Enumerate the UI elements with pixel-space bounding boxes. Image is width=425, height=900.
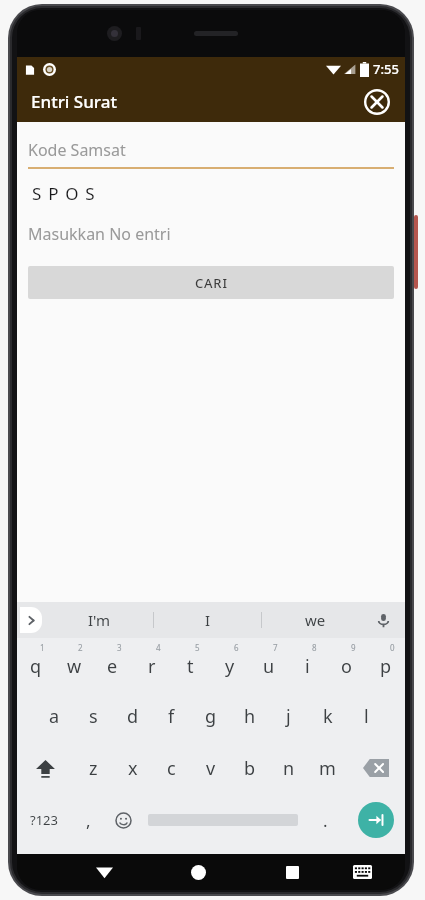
button[interactable]: Shift bbox=[17, 742, 74, 794]
button[interactable]: x bbox=[113, 742, 152, 794]
staticText: we bbox=[305, 610, 326, 630]
staticText: p bbox=[380, 654, 392, 679]
button[interactable]: . bbox=[304, 794, 347, 846]
staticText: Entri Surat bbox=[31, 90, 117, 113]
staticText: Masukkan No entri bbox=[28, 223, 171, 245]
staticText: Kode Samsat bbox=[28, 139, 126, 161]
staticText: 2 bbox=[78, 642, 83, 653]
staticText: a bbox=[49, 704, 60, 729]
staticText: u bbox=[263, 654, 275, 679]
button[interactable]: 8 bbox=[288, 638, 327, 690]
staticText: w bbox=[67, 654, 82, 679]
button[interactable]: Home bbox=[163, 854, 233, 890]
button[interactable]: 2 bbox=[55, 638, 93, 690]
staticText: h bbox=[244, 704, 256, 729]
staticText: v bbox=[206, 756, 216, 781]
button[interactable]: 5 bbox=[171, 638, 210, 690]
button[interactable]: Backspace bbox=[347, 742, 405, 794]
button[interactable]: Masukkan No entri bbox=[28, 223, 394, 245]
button[interactable]: 1 bbox=[17, 638, 55, 690]
staticText: . bbox=[323, 809, 328, 832]
button[interactable]: 4 bbox=[132, 638, 171, 690]
staticText: 3 bbox=[117, 642, 122, 653]
button[interactable]: Close bbox=[360, 85, 394, 119]
button[interactable]: c bbox=[152, 742, 191, 794]
button[interactable]: Next bbox=[358, 802, 394, 838]
staticText: , bbox=[86, 809, 91, 832]
staticText: i bbox=[305, 654, 310, 679]
button[interactable]: 7 bbox=[249, 638, 288, 690]
staticText: s bbox=[89, 704, 98, 729]
button[interactable]: g bbox=[191, 690, 230, 742]
button[interactable]: Recents bbox=[257, 854, 327, 890]
staticText: j bbox=[286, 704, 291, 729]
staticText: 9 bbox=[351, 642, 356, 653]
staticText: z bbox=[89, 756, 98, 781]
staticText: l bbox=[364, 704, 369, 729]
button[interactable]: d bbox=[113, 690, 152, 742]
button[interactable]: Back bbox=[69, 854, 139, 890]
staticText: 6 bbox=[234, 642, 239, 653]
staticText: y bbox=[225, 654, 235, 679]
button[interactable]: Emoji bbox=[106, 794, 141, 846]
staticText: m bbox=[319, 756, 336, 781]
staticText: t bbox=[187, 654, 194, 679]
staticText: ?123 bbox=[30, 811, 58, 829]
button[interactable]: m bbox=[308, 742, 347, 794]
staticText: c bbox=[167, 756, 176, 781]
button[interactable]: we bbox=[262, 602, 369, 638]
button[interactable]: k bbox=[308, 690, 347, 742]
staticText: q bbox=[30, 654, 42, 679]
button[interactable]: 9 bbox=[327, 638, 366, 690]
button[interactable]: a bbox=[35, 690, 74, 742]
button[interactable]: I'm bbox=[45, 602, 153, 638]
staticText: 8 bbox=[312, 642, 317, 653]
button[interactable]: n bbox=[269, 742, 308, 794]
button[interactable]: 3 bbox=[93, 638, 132, 690]
staticText: e bbox=[107, 654, 118, 679]
button[interactable]: ?123 bbox=[17, 794, 71, 846]
button[interactable]: s bbox=[74, 690, 113, 742]
button[interactable]: z bbox=[74, 742, 113, 794]
button[interactable]: Kode Samsat bbox=[28, 139, 394, 169]
button[interactable]: j bbox=[269, 690, 308, 742]
staticText: 1 bbox=[40, 642, 45, 653]
button[interactable]: 6 bbox=[210, 638, 249, 690]
staticText: CARI bbox=[195, 274, 228, 292]
staticText: r bbox=[148, 654, 156, 679]
button[interactable]: Voice input bbox=[369, 606, 397, 634]
button[interactable]: f bbox=[152, 690, 191, 742]
staticText: f bbox=[168, 704, 175, 729]
staticText: I bbox=[205, 610, 211, 630]
staticText: x bbox=[128, 756, 138, 781]
button[interactable]: CARI bbox=[28, 266, 394, 299]
button[interactable]: I bbox=[154, 602, 261, 638]
staticText: 7 bbox=[273, 642, 278, 653]
staticText: b bbox=[244, 756, 256, 781]
staticText: 4 bbox=[156, 642, 161, 653]
staticText: 5 bbox=[195, 642, 200, 653]
button[interactable]: h bbox=[230, 690, 269, 742]
button[interactable]: Space bbox=[141, 794, 304, 846]
button[interactable]: , bbox=[71, 794, 106, 846]
staticText: o bbox=[341, 654, 352, 679]
staticText: 7:55 bbox=[373, 60, 399, 78]
staticText: k bbox=[323, 704, 333, 729]
button[interactable]: l bbox=[347, 690, 386, 742]
button[interactable]: v bbox=[191, 742, 230, 794]
button[interactable]: 0 bbox=[366, 638, 405, 690]
staticText: S P O S bbox=[32, 182, 96, 205]
button[interactable]: More suggestions bbox=[20, 607, 42, 633]
staticText: g bbox=[205, 704, 217, 729]
staticText: 0 bbox=[390, 642, 395, 653]
staticText: n bbox=[283, 756, 295, 781]
button[interactable]: b bbox=[230, 742, 269, 794]
staticText: I'm bbox=[88, 610, 111, 630]
button[interactable]: Switch keyboard bbox=[327, 854, 397, 890]
staticText: d bbox=[127, 704, 139, 729]
